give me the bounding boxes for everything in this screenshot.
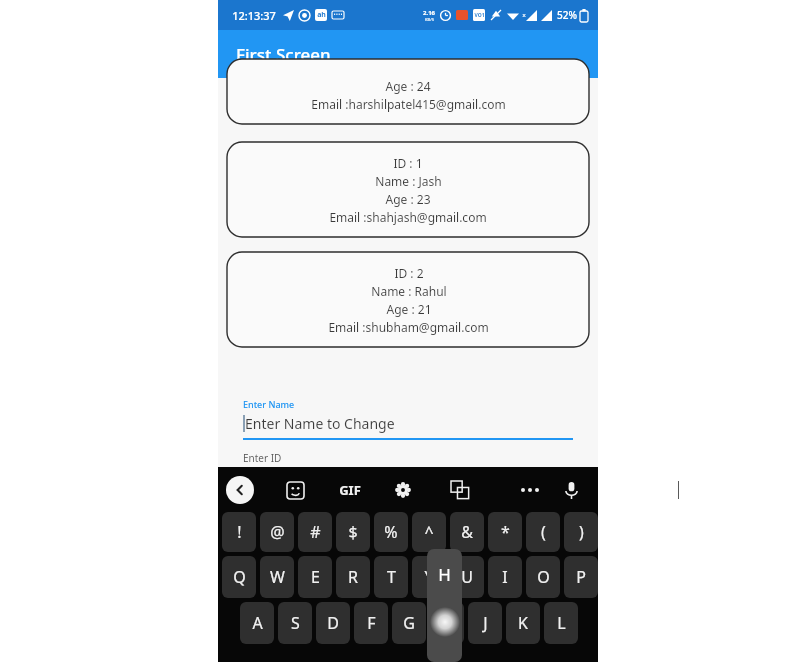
staticText: @ [270, 521, 285, 543]
staticText: Name : Rahul [371, 283, 447, 299]
staticText: H [438, 563, 451, 586]
staticText: Enter ID [243, 451, 282, 465]
staticText: x [522, 11, 526, 19]
button[interactable]: U [450, 556, 484, 598]
button[interactable]: ) [564, 512, 598, 552]
button[interactable]: @ [260, 512, 294, 552]
staticText: J [483, 612, 488, 634]
button[interactable]: % [374, 512, 408, 552]
staticText: G [403, 612, 415, 634]
button[interactable]: Translate [445, 475, 475, 505]
button[interactable]: H [430, 602, 464, 644]
staticText: ) [579, 521, 584, 543]
button[interactable]: A [240, 602, 274, 644]
staticText: Y [424, 566, 434, 588]
button[interactable]: ! [222, 512, 256, 552]
staticText: $ [348, 521, 358, 543]
staticText: ^ [424, 521, 434, 543]
staticText: GIF [339, 481, 361, 499]
staticText: H [441, 612, 453, 634]
button[interactable]: ^ [412, 512, 446, 552]
staticText: 52% [557, 8, 577, 22]
staticText: ( [541, 521, 546, 543]
staticText: ah [317, 10, 326, 20]
button[interactable]: * [488, 512, 522, 552]
staticText: L [557, 612, 566, 634]
button[interactable]: $ [336, 512, 370, 552]
staticText: R [348, 566, 358, 588]
staticText: ID : 1 [393, 155, 423, 171]
staticText: VO1 [474, 12, 485, 19]
staticText: U [461, 566, 473, 588]
staticText: O [537, 566, 550, 588]
button[interactable]: Voice input [556, 475, 586, 505]
staticText: Age : 23 [385, 191, 431, 207]
button[interactable]: GIF [330, 470, 370, 510]
button[interactable] [227, 59, 589, 124]
button[interactable]: ID : 2 [227, 252, 589, 347]
button[interactable]: J [468, 602, 502, 644]
button[interactable]: S [278, 602, 312, 644]
button[interactable]: O [526, 556, 560, 598]
button[interactable]: F [354, 602, 388, 644]
staticText: S [291, 612, 300, 634]
button[interactable]: # [298, 512, 332, 552]
staticText: KB/S [425, 17, 434, 22]
staticText: # [310, 521, 321, 543]
button[interactable]: P [564, 556, 598, 598]
button[interactable]: D [316, 602, 350, 644]
staticText: P [576, 566, 586, 588]
staticText: % [384, 521, 398, 543]
staticText: 2.16 [423, 9, 435, 17]
staticText: F [367, 612, 376, 634]
staticText: ID : 2 [394, 265, 424, 281]
staticText: Enter Name [243, 398, 295, 410]
button[interactable]: More options [515, 475, 545, 505]
staticText: Enter Name to Change [245, 414, 395, 433]
button[interactable]: W [260, 556, 294, 598]
staticText: Age : 24 [385, 78, 431, 94]
staticText: D [327, 612, 339, 634]
staticText: * [501, 521, 510, 543]
staticText: ! [237, 521, 242, 543]
staticText: & [461, 521, 473, 543]
button[interactable]: Settings [388, 475, 418, 505]
staticText: T [387, 566, 396, 588]
staticText: A [252, 612, 263, 634]
staticText: I [502, 566, 508, 588]
button[interactable]: K [506, 602, 540, 644]
button[interactable]: E [298, 556, 332, 598]
staticText: First Screen [236, 43, 331, 66]
staticText: K [518, 612, 528, 634]
button[interactable]: Stickers [280, 475, 310, 505]
button[interactable]: ID : 1 [227, 142, 589, 237]
staticText: 12:13:37 [232, 8, 276, 23]
staticText: W [270, 566, 285, 588]
button[interactable]: G [392, 602, 426, 644]
staticText: Email :shahjash@gmail.com [329, 209, 487, 225]
button[interactable]: ( [526, 512, 560, 552]
button[interactable]: R [336, 556, 370, 598]
staticText: Age : 21 [386, 301, 432, 317]
button[interactable]: Back [226, 476, 254, 504]
button[interactable]: I [488, 556, 522, 598]
button[interactable]: & [450, 512, 484, 552]
button[interactable]: T [374, 556, 408, 598]
staticText: Email :shubham@gmail.com [328, 319, 489, 335]
staticText: Name : Jash [375, 173, 442, 189]
button[interactable]: Y [412, 556, 446, 598]
staticText: Q [233, 566, 246, 588]
staticText: Email :harshilpatel415@gmail.com [311, 96, 506, 112]
button[interactable]: Q [222, 556, 256, 598]
button[interactable]: L [544, 602, 578, 644]
staticText: E [311, 566, 320, 588]
